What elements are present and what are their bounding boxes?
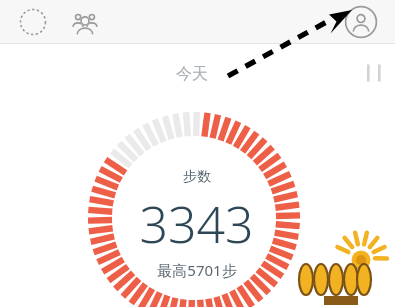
- staticText: 最高5701步: [157, 260, 237, 280]
- button[interactable]: Profile: [344, 5, 378, 39]
- staticText: 步数: [183, 168, 211, 186]
- staticText: 3343: [139, 190, 254, 258]
- button[interactable]: Friends: [70, 8, 100, 38]
- staticText: 今天: [176, 64, 208, 84]
- button[interactable]: Pause: [358, 58, 392, 88]
- button[interactable]: Activity rings: [18, 7, 48, 37]
